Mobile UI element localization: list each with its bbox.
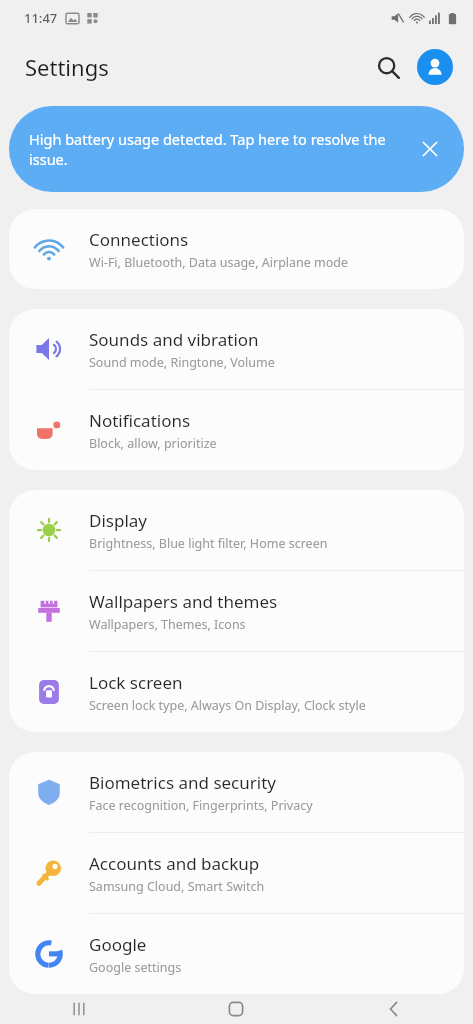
staticText: Notifications — [89, 409, 191, 432]
button[interactable]: Notifications — [9, 390, 464, 470]
button[interactable]: Accounts and backup — [9, 833, 464, 913]
staticText: High battery usage detected. Tap here to… — [29, 129, 400, 170]
staticText: Sounds and vibration — [89, 328, 259, 351]
staticText: Display — [89, 509, 147, 532]
button[interactable]: Lock screen — [9, 652, 464, 732]
button[interactable]: Back — [315, 994, 473, 1024]
staticText: Wallpapers, Themes, Icons — [89, 616, 246, 633]
staticText: Block, allow, prioritize — [89, 435, 217, 452]
button[interactable]: Account — [417, 49, 453, 85]
staticText: Biometrics and security — [89, 771, 276, 794]
staticText: Lock screen — [89, 671, 183, 694]
button[interactable]: Home — [157, 994, 315, 1024]
staticText: Screen lock type, Always On Display, Clo… — [89, 697, 366, 714]
button[interactable]: Sounds and vibration — [9, 309, 464, 389]
button[interactable]: Biometrics and security — [9, 752, 464, 832]
staticText: Connections — [89, 228, 189, 251]
button[interactable]: Google — [9, 914, 464, 994]
staticText: Google — [89, 933, 147, 956]
button[interactable]: Wallpapers and themes — [9, 571, 464, 651]
staticText: Face recognition, Fingerprints, Privacy — [89, 797, 313, 814]
button[interactable]: Recents — [0, 994, 157, 1024]
staticText: Accounts and backup — [89, 852, 260, 875]
button[interactable]: High battery usage detected. Tap here to… — [9, 106, 464, 192]
staticText: Wi-Fi, Bluetooth, Data usage, Airplane m… — [89, 254, 349, 271]
staticText: 11:47 — [24, 9, 58, 27]
button[interactable]: Close — [410, 129, 450, 169]
staticText: Sound mode, Ringtone, Volume — [89, 354, 275, 371]
staticText: Samsung Cloud, Smart Switch — [89, 878, 265, 895]
button[interactable]: Connections — [9, 209, 464, 289]
button[interactable]: Display — [9, 490, 464, 570]
staticText: Wallpapers and themes — [89, 590, 278, 613]
button[interactable]: Search — [367, 46, 409, 88]
staticText: Google settings — [89, 959, 182, 976]
staticText: Brightness, Blue light filter, Home scre… — [89, 535, 328, 552]
staticText: Settings — [25, 52, 109, 82]
